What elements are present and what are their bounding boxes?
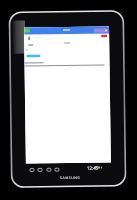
button[interactable]: soft key <box>46 168 51 171</box>
button[interactable] <box>94 28 108 33</box>
button[interactable] <box>26 54 40 58</box>
button[interactable] <box>24 28 30 33</box>
staticText: 12:45 <box>87 165 99 171</box>
button[interactable]: soft key <box>29 168 34 172</box>
button[interactable] <box>101 34 107 37</box>
button[interactable]: soft key <box>54 168 59 171</box>
staticText: SAMSUNG <box>60 175 81 180</box>
button[interactable]: soft key <box>37 168 42 171</box>
